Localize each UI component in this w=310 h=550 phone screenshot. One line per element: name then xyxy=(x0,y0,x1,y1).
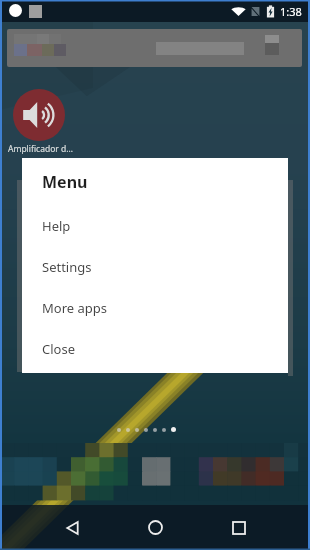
staticText: 1:38 xyxy=(280,4,302,19)
staticText: Amplificador d… xyxy=(8,143,74,155)
staticText: Settings xyxy=(42,258,92,276)
button[interactable]: Recents xyxy=(217,505,261,550)
button[interactable]: Help xyxy=(22,205,288,246)
button[interactable]: Search xyxy=(7,29,302,67)
staticText: More apps xyxy=(42,299,107,317)
button[interactable]: Close xyxy=(22,328,288,369)
button[interactable]: More apps xyxy=(22,287,288,328)
button[interactable]: Amplificador de som xyxy=(13,89,65,141)
staticText: Help xyxy=(42,217,71,235)
button[interactable]: Home xyxy=(133,505,177,550)
button[interactable]: Settings xyxy=(22,246,288,287)
staticText: Close xyxy=(42,340,75,358)
button[interactable]: Back xyxy=(50,505,94,550)
staticText: Menu xyxy=(42,171,88,193)
